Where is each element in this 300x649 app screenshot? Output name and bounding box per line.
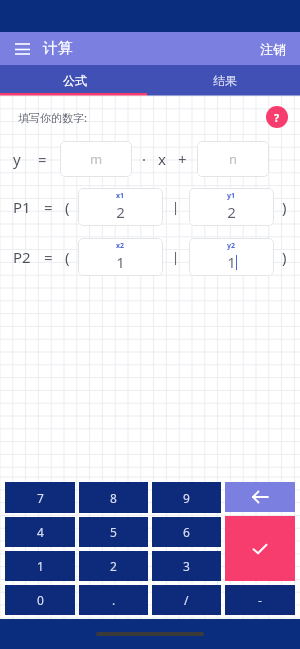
staticText: 计算: [43, 39, 73, 58]
staticText: 6: [183, 524, 190, 540]
staticText: +: [178, 149, 187, 169]
staticText: y: [13, 149, 21, 169]
staticText: 9: [183, 490, 190, 506]
button[interactable]: Confirm: [225, 516, 295, 581]
button[interactable]: .: [79, 585, 148, 615]
staticText: 0: [37, 592, 44, 608]
button[interactable]: 公式: [0, 65, 150, 96]
button[interactable]: Menu: [12, 39, 32, 59]
button[interactable]: 2: [79, 551, 148, 581]
button[interactable]: 0: [5, 585, 75, 615]
button[interactable]: 8: [79, 482, 148, 513]
staticText: |: [172, 198, 180, 216]
staticText: 2: [227, 202, 236, 222]
staticText: 1: [116, 252, 125, 272]
staticText: 公式: [63, 73, 87, 88]
button[interactable]: Backspace: [225, 482, 295, 512]
staticText: (: [65, 197, 70, 217]
staticText: 8: [110, 490, 117, 506]
button[interactable]: Help: [266, 106, 288, 128]
staticText: 5: [110, 524, 117, 540]
staticText: n: [229, 150, 238, 168]
button[interactable]: y1: [189, 188, 274, 226]
button[interactable]: /: [152, 585, 221, 615]
button[interactable]: x2: [78, 238, 163, 276]
button[interactable]: 5: [79, 517, 148, 547]
staticText: /: [184, 592, 189, 608]
staticText: (: [65, 247, 70, 267]
staticText: 4: [37, 524, 44, 540]
staticText: .: [112, 592, 116, 608]
staticText: P2: [13, 247, 31, 267]
button[interactable]: 7: [5, 482, 75, 513]
staticText: 结果: [213, 73, 237, 88]
button[interactable]: 结果: [150, 65, 300, 96]
button[interactable]: 注销: [258, 37, 288, 61]
button[interactable]: 6: [152, 517, 221, 547]
staticText: y2: [227, 241, 236, 251]
staticText: 注销: [260, 41, 286, 57]
button[interactable]: 9: [152, 482, 221, 513]
staticText: x1: [116, 191, 125, 201]
button[interactable]: m: [60, 141, 132, 177]
staticText: ?: [274, 110, 280, 125]
staticText: 1: [37, 558, 44, 574]
staticText: ·: [142, 149, 147, 169]
staticText: =: [44, 197, 53, 217]
staticText: 2: [116, 202, 125, 222]
button[interactable]: 1: [5, 551, 75, 581]
staticText: P1: [13, 197, 31, 217]
button[interactable]: 3: [152, 551, 221, 581]
staticText: m: [90, 150, 103, 168]
button[interactable]: x1: [78, 188, 163, 226]
staticText: 3: [183, 558, 190, 574]
button[interactable]: -: [225, 585, 295, 615]
staticText: 7: [37, 490, 44, 506]
button[interactable]: y2: [189, 238, 274, 276]
staticText: |: [172, 248, 180, 266]
button[interactable]: n: [197, 141, 269, 177]
staticText: 1: [227, 252, 236, 272]
staticText: -: [258, 592, 262, 608]
staticText: =: [44, 247, 53, 267]
staticText: =: [38, 149, 47, 169]
staticText: 填写你的数字:: [18, 110, 87, 125]
button[interactable]: 4: [5, 517, 75, 547]
staticText: 2: [110, 558, 117, 574]
staticText: y1: [227, 191, 236, 201]
staticText: ): [282, 247, 287, 267]
staticText: ): [282, 197, 287, 217]
staticText: x2: [116, 241, 125, 251]
staticText: x: [158, 149, 166, 169]
